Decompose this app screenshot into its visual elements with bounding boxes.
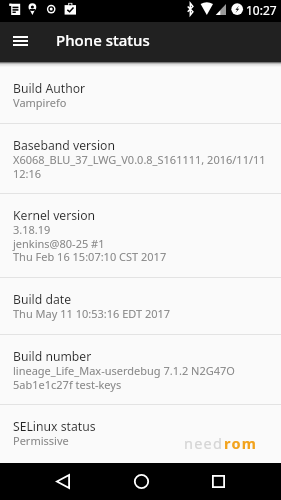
staticText: 3.18.19 jenkins@80-25 #1 Thu Feb 16 15:0… [13, 222, 167, 264]
button[interactable]: Open navigation drawer [0, 22, 40, 62]
button[interactable]: Home [117, 463, 165, 500]
staticText: rom [224, 433, 257, 453]
button[interactable]: Baseband version [0, 124, 281, 193]
staticText: Build date [13, 291, 72, 308]
staticText: Kernel version [13, 207, 96, 224]
staticText: Phone status [56, 30, 150, 50]
button[interactable]: Build date [0, 278, 281, 334]
button[interactable]: Back [39, 463, 87, 500]
staticText: Thu May 11 10:53:16 EDT 2017 [13, 306, 171, 321]
button[interactable]: Recent apps [194, 463, 242, 500]
button[interactable]: Build number [0, 335, 281, 404]
staticText: need [184, 433, 224, 453]
staticText: Permissive [13, 433, 69, 448]
staticText: X6068_BLU_37_LWG_V0.0.8_S161111, 2016/11… [13, 152, 266, 181]
staticText: 10:27 [246, 2, 277, 18]
button[interactable]: SELinux status [0, 405, 281, 461]
staticText: lineage_Life_Max-userdebug 7.1.2 N2G47O … [13, 363, 235, 392]
staticText: Build Author [13, 80, 86, 97]
staticText: SELinux status [13, 418, 96, 435]
button[interactable]: Build Author [0, 67, 281, 123]
button[interactable]: Kernel version [0, 194, 281, 277]
staticText: Build number [13, 348, 92, 365]
staticText: Baseband version [13, 137, 115, 154]
staticText: Vampirefo [13, 95, 67, 110]
